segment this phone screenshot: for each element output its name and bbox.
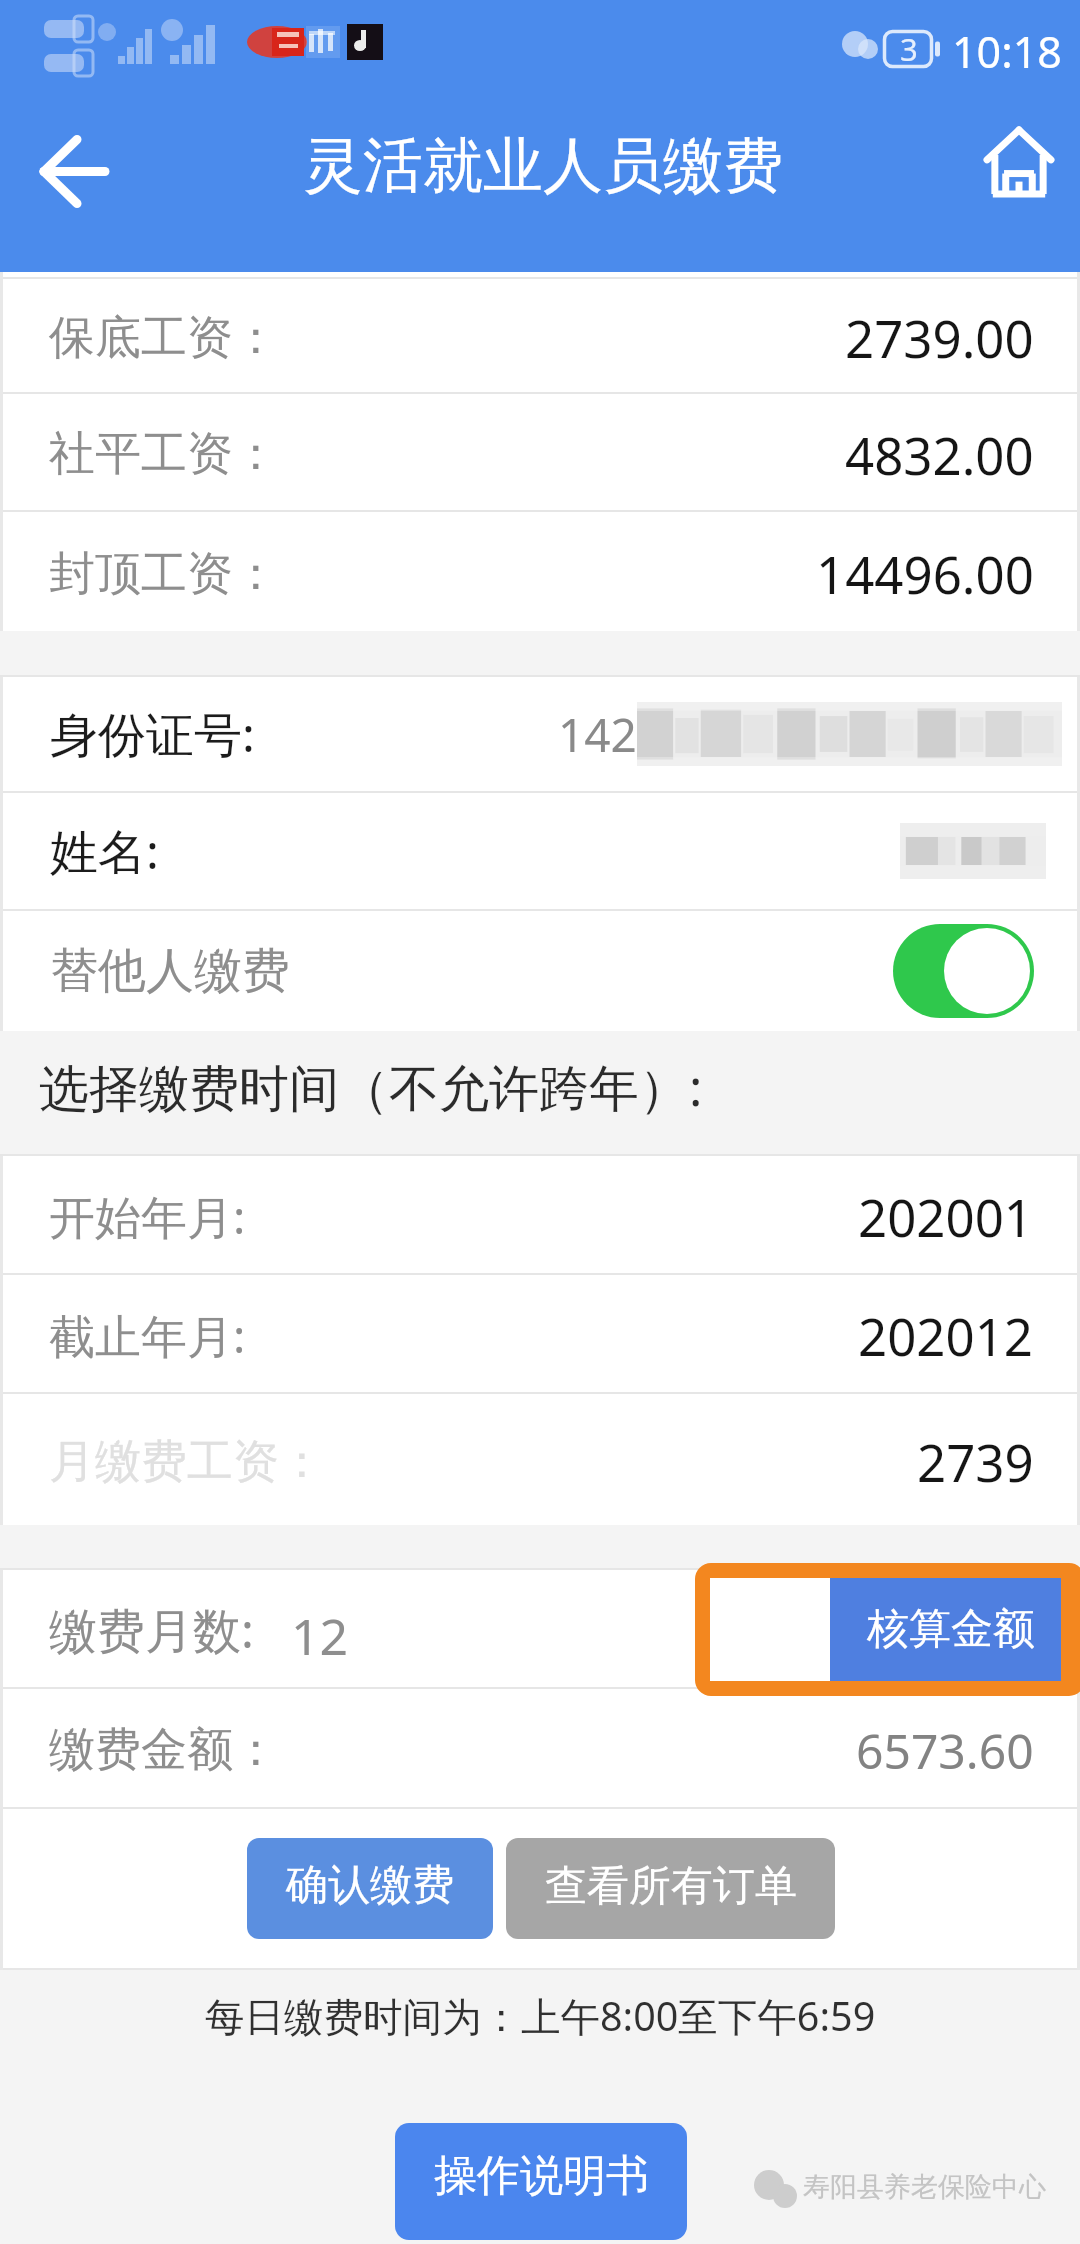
- staticText: 月缴费工资：: [49, 1433, 325, 1491]
- staticText: 选择缴费时间（不允许跨年）:: [39, 1053, 703, 1121]
- staticText: 查看所有订单: [545, 1860, 797, 1913]
- staticText: 开始年月:: [49, 1185, 246, 1248]
- button[interactable]: Pay for someone else toggle: [893, 924, 1034, 1018]
- button[interactable]: 核算金额: [830, 1578, 1061, 1681]
- staticText: 确认缴费: [286, 1859, 454, 1912]
- staticText: 操作说明书: [434, 2149, 649, 2203]
- button[interactable]: Home: [968, 112, 1070, 212]
- button[interactable]: 确认缴费: [247, 1838, 493, 1939]
- button[interactable]: Back: [9, 111, 137, 231]
- button[interactable]: 查看所有订单: [506, 1838, 835, 1939]
- button[interactable]: 身份证号:: [0, 677, 1080, 791]
- button[interactable]: 社平工资：: [0, 394, 1080, 510]
- button[interactable]: 封顶工资：: [0, 512, 1080, 631]
- staticText: 灵活就业人员缴费: [303, 128, 783, 204]
- staticText: 缴费月数:: [49, 1597, 254, 1663]
- staticText: 12: [291, 1602, 349, 1670]
- staticText: 3: [900, 28, 918, 70]
- staticText: 身份证号:: [50, 701, 255, 767]
- button[interactable]: 月缴费工资：: [0, 1394, 1080, 1525]
- staticText: 缴费金额：: [49, 1721, 279, 1779]
- button[interactable]: 操作说明书: [395, 2123, 687, 2240]
- staticText: 14496.00: [816, 539, 1034, 608]
- staticText: 姓名:: [50, 818, 159, 884]
- button[interactable]: 缴费月数:: [0, 1570, 1080, 1687]
- button[interactable]: 保底工资：: [0, 279, 1080, 392]
- staticText: 202012: [858, 1301, 1034, 1370]
- staticText: 202001: [858, 1182, 1034, 1251]
- button[interactable]: 姓名:: [0, 793, 1080, 909]
- staticText: 核算金额: [867, 1603, 1035, 1656]
- staticText: 142: [558, 703, 637, 766]
- staticText: 10:18: [952, 22, 1062, 81]
- staticText: 社平工资：: [49, 425, 279, 483]
- button[interactable]: 截止年月:: [0, 1275, 1080, 1392]
- button[interactable]: 缴费金额：: [0, 1689, 1080, 1807]
- staticText: 6573.60: [856, 1718, 1034, 1783]
- button[interactable]: 开始年月:: [0, 1156, 1080, 1273]
- staticText: 4832.00: [845, 420, 1034, 489]
- staticText: 封顶工资：: [49, 545, 279, 603]
- staticText: 保底工资：: [49, 309, 279, 367]
- staticText: 2739.00: [845, 303, 1034, 372]
- staticText: 每日缴费时间为：上午8:00至下午6:59: [205, 1989, 876, 2043]
- button[interactable]: 替他人缴费: [0, 911, 1080, 1031]
- staticText: 2739: [917, 1427, 1034, 1496]
- staticText: 替他人缴费: [50, 941, 290, 1001]
- staticText: 寿阳县养老保险中心: [803, 2170, 1046, 2204]
- staticText: 截止年月:: [49, 1304, 246, 1367]
